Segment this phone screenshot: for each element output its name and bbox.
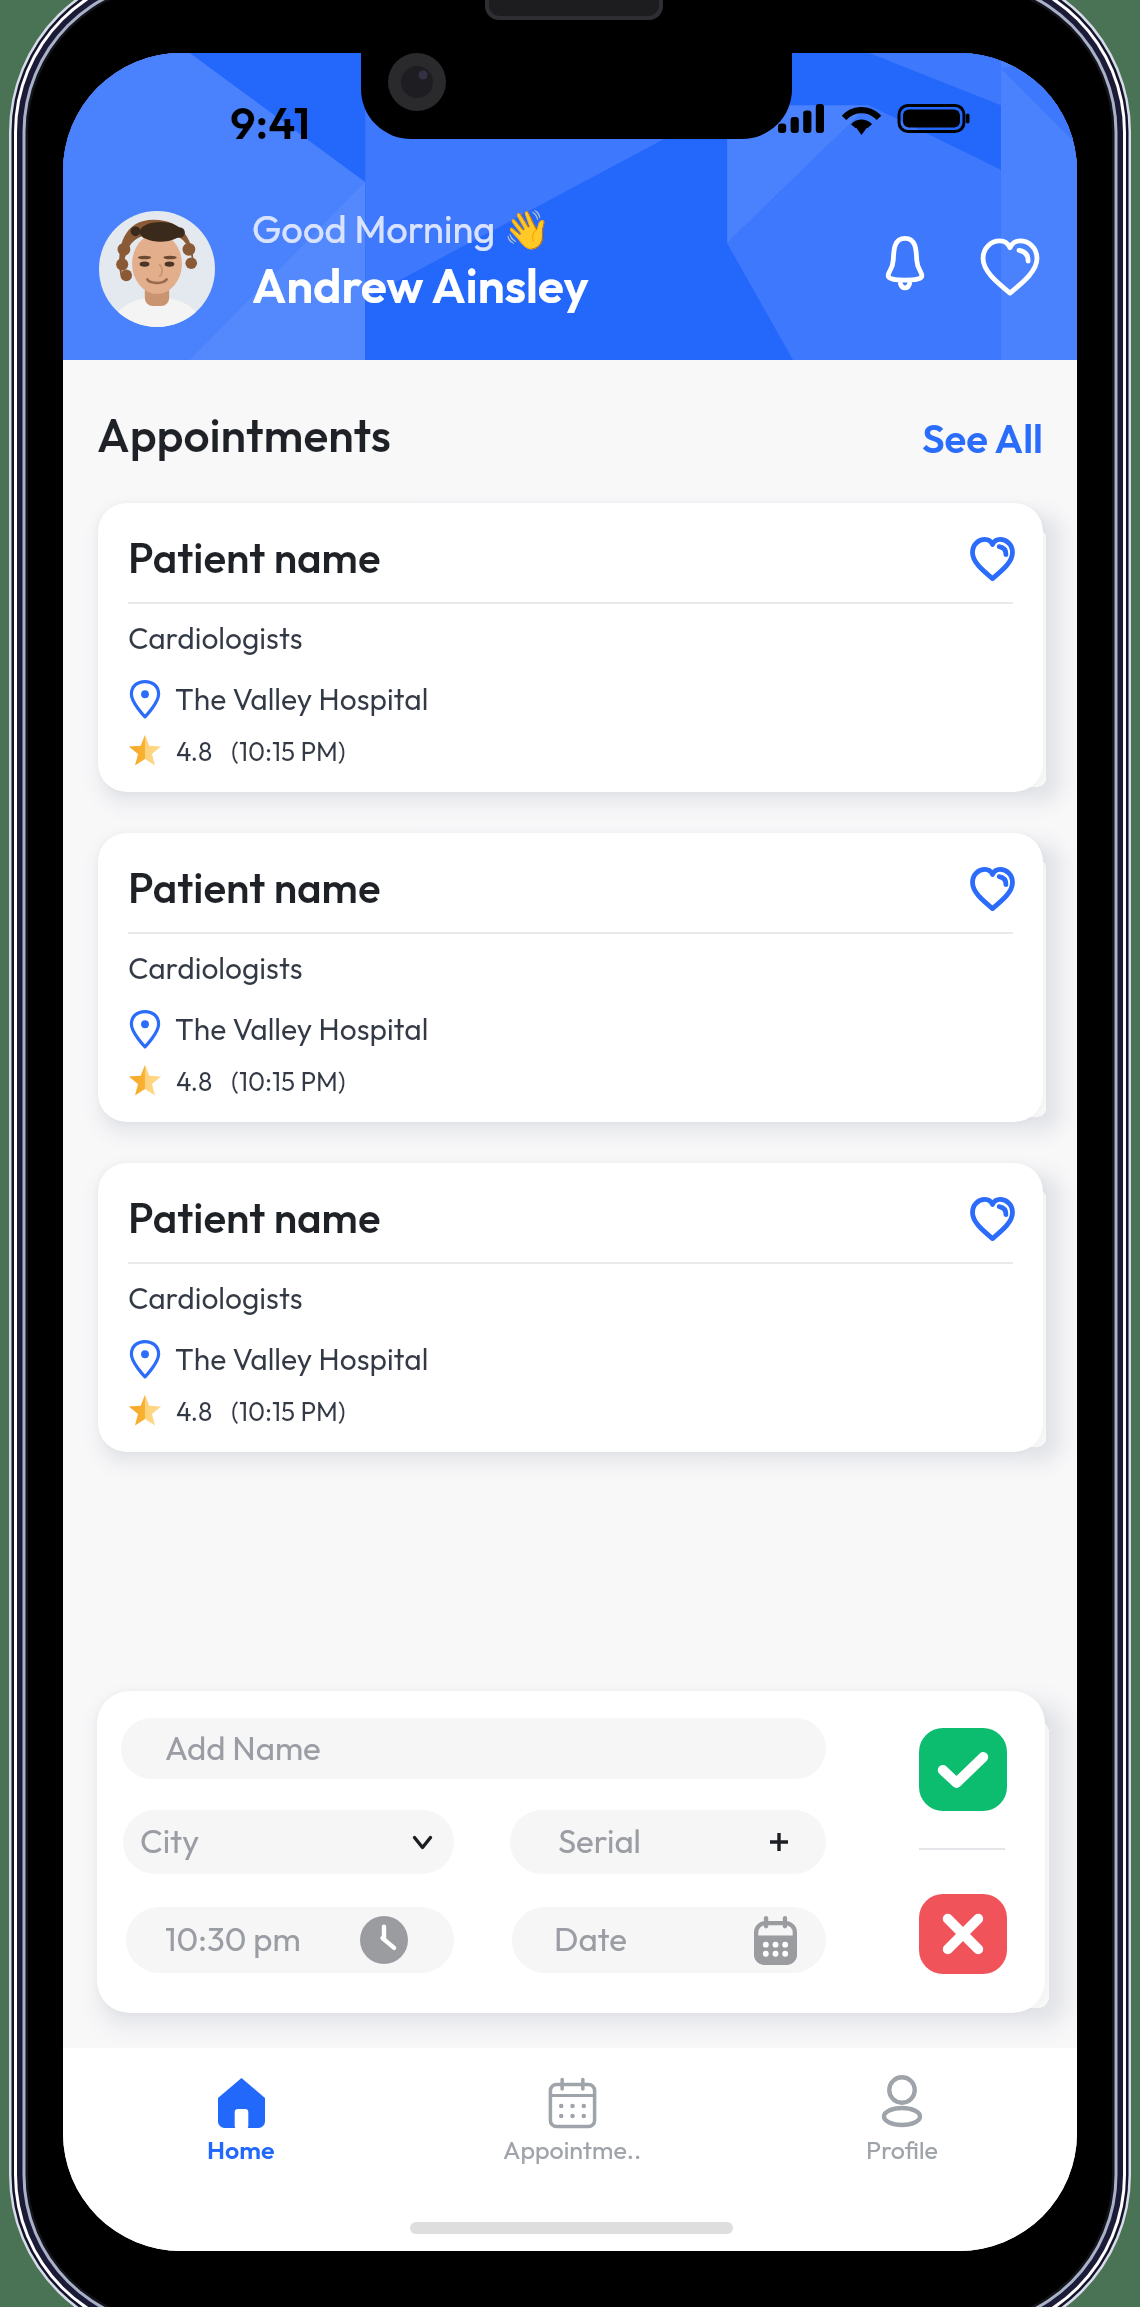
staticText: The Valley Hospital	[175, 1010, 429, 1048]
staticText: (10:15 PM)	[231, 1395, 346, 1428]
staticText: Serial	[558, 1820, 641, 1862]
staticText: Good Morning 👋	[252, 205, 551, 253]
button[interactable]: Favourite	[962, 1189, 1022, 1249]
staticText: (10:15 PM)	[231, 735, 346, 768]
button[interactable]: Serial	[510, 1810, 826, 1874]
button[interactable]: Favourites	[968, 225, 1052, 309]
staticText: Patient name	[128, 861, 381, 914]
button[interactable]: 10:30 pm	[126, 1907, 454, 1973]
staticText: Add Name	[165, 1727, 321, 1769]
button[interactable]: Favourite	[962, 859, 1022, 919]
staticText: See All	[922, 413, 1043, 457]
button[interactable]: Favourite	[962, 529, 1022, 589]
button[interactable]: Confirm	[919, 1728, 1007, 1811]
button[interactable]: Patient name	[98, 503, 1043, 792]
staticText: 4.8	[176, 1395, 213, 1428]
staticText: 9:41	[230, 94, 311, 151]
button[interactable]: Notifications	[863, 220, 947, 304]
staticText: The Valley Hospital	[175, 1340, 429, 1378]
button[interactable]: Date	[512, 1907, 826, 1973]
staticText: Cardiologists	[128, 1279, 303, 1317]
staticText: Patient name	[128, 1191, 381, 1244]
staticText: Cardiologists	[128, 619, 303, 657]
button[interactable]: Patient name	[98, 1163, 1043, 1452]
staticText: The Valley Hospital	[175, 680, 429, 718]
staticText: City	[140, 1820, 200, 1862]
button[interactable]: Add Name	[121, 1718, 826, 1779]
staticText: (10:15 PM)	[231, 1065, 346, 1098]
button[interactable]: City	[123, 1810, 454, 1874]
staticText: Appointme..	[503, 2134, 642, 2166]
staticText: Home	[207, 2134, 275, 2166]
staticText: Appointments	[97, 406, 391, 464]
button[interactable]: Appointme..	[492, 2065, 652, 2185]
staticText: Patient name	[128, 531, 381, 584]
button[interactable]: Home	[161, 2065, 321, 2185]
staticText: 4.8	[176, 1065, 213, 1098]
button[interactable]: Patient name	[98, 833, 1043, 1122]
button[interactable]: Profile	[822, 2065, 982, 2185]
staticText: Date	[554, 1918, 627, 1960]
staticText: Cardiologists	[128, 949, 303, 987]
staticText: Profile	[866, 2134, 938, 2166]
button[interactable]: Cancel	[919, 1894, 1007, 1974]
staticText: Andrew Ainsley	[252, 255, 589, 315]
staticText: 4.8	[176, 735, 213, 768]
button[interactable]: See All	[914, 405, 1051, 465]
staticText: 10:30 pm	[165, 1918, 301, 1960]
